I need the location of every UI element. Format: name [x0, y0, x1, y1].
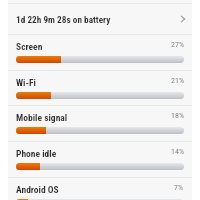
- staticText: Android OS: [16, 184, 59, 195]
- staticText: 21%: [171, 76, 184, 85]
- button[interactable]: Battery history details: [177, 13, 189, 25]
- staticText: 14%: [171, 147, 184, 156]
- staticText: 1d 22h 9m 28s on battery: [16, 14, 111, 25]
- staticText: Screen: [16, 41, 43, 52]
- staticText: 7%: [174, 183, 184, 192]
- staticText: 27%: [171, 40, 184, 49]
- staticText: Phone idle: [16, 148, 57, 159]
- staticText: Wi-Fi: [16, 77, 36, 88]
- staticText: 18%: [171, 111, 184, 120]
- button[interactable]: Mobile signal: [8, 105, 192, 141]
- staticText: Mobile signal: [16, 112, 68, 123]
- button[interactable]: Screen: [8, 34, 192, 70]
- button[interactable]: Phone idle: [8, 141, 192, 177]
- button[interactable]: 1d 22h 9m 28s on battery: [8, 4, 192, 34]
- button[interactable]: Android OS: [8, 177, 192, 200]
- button[interactable]: Wi-Fi: [8, 70, 192, 105]
